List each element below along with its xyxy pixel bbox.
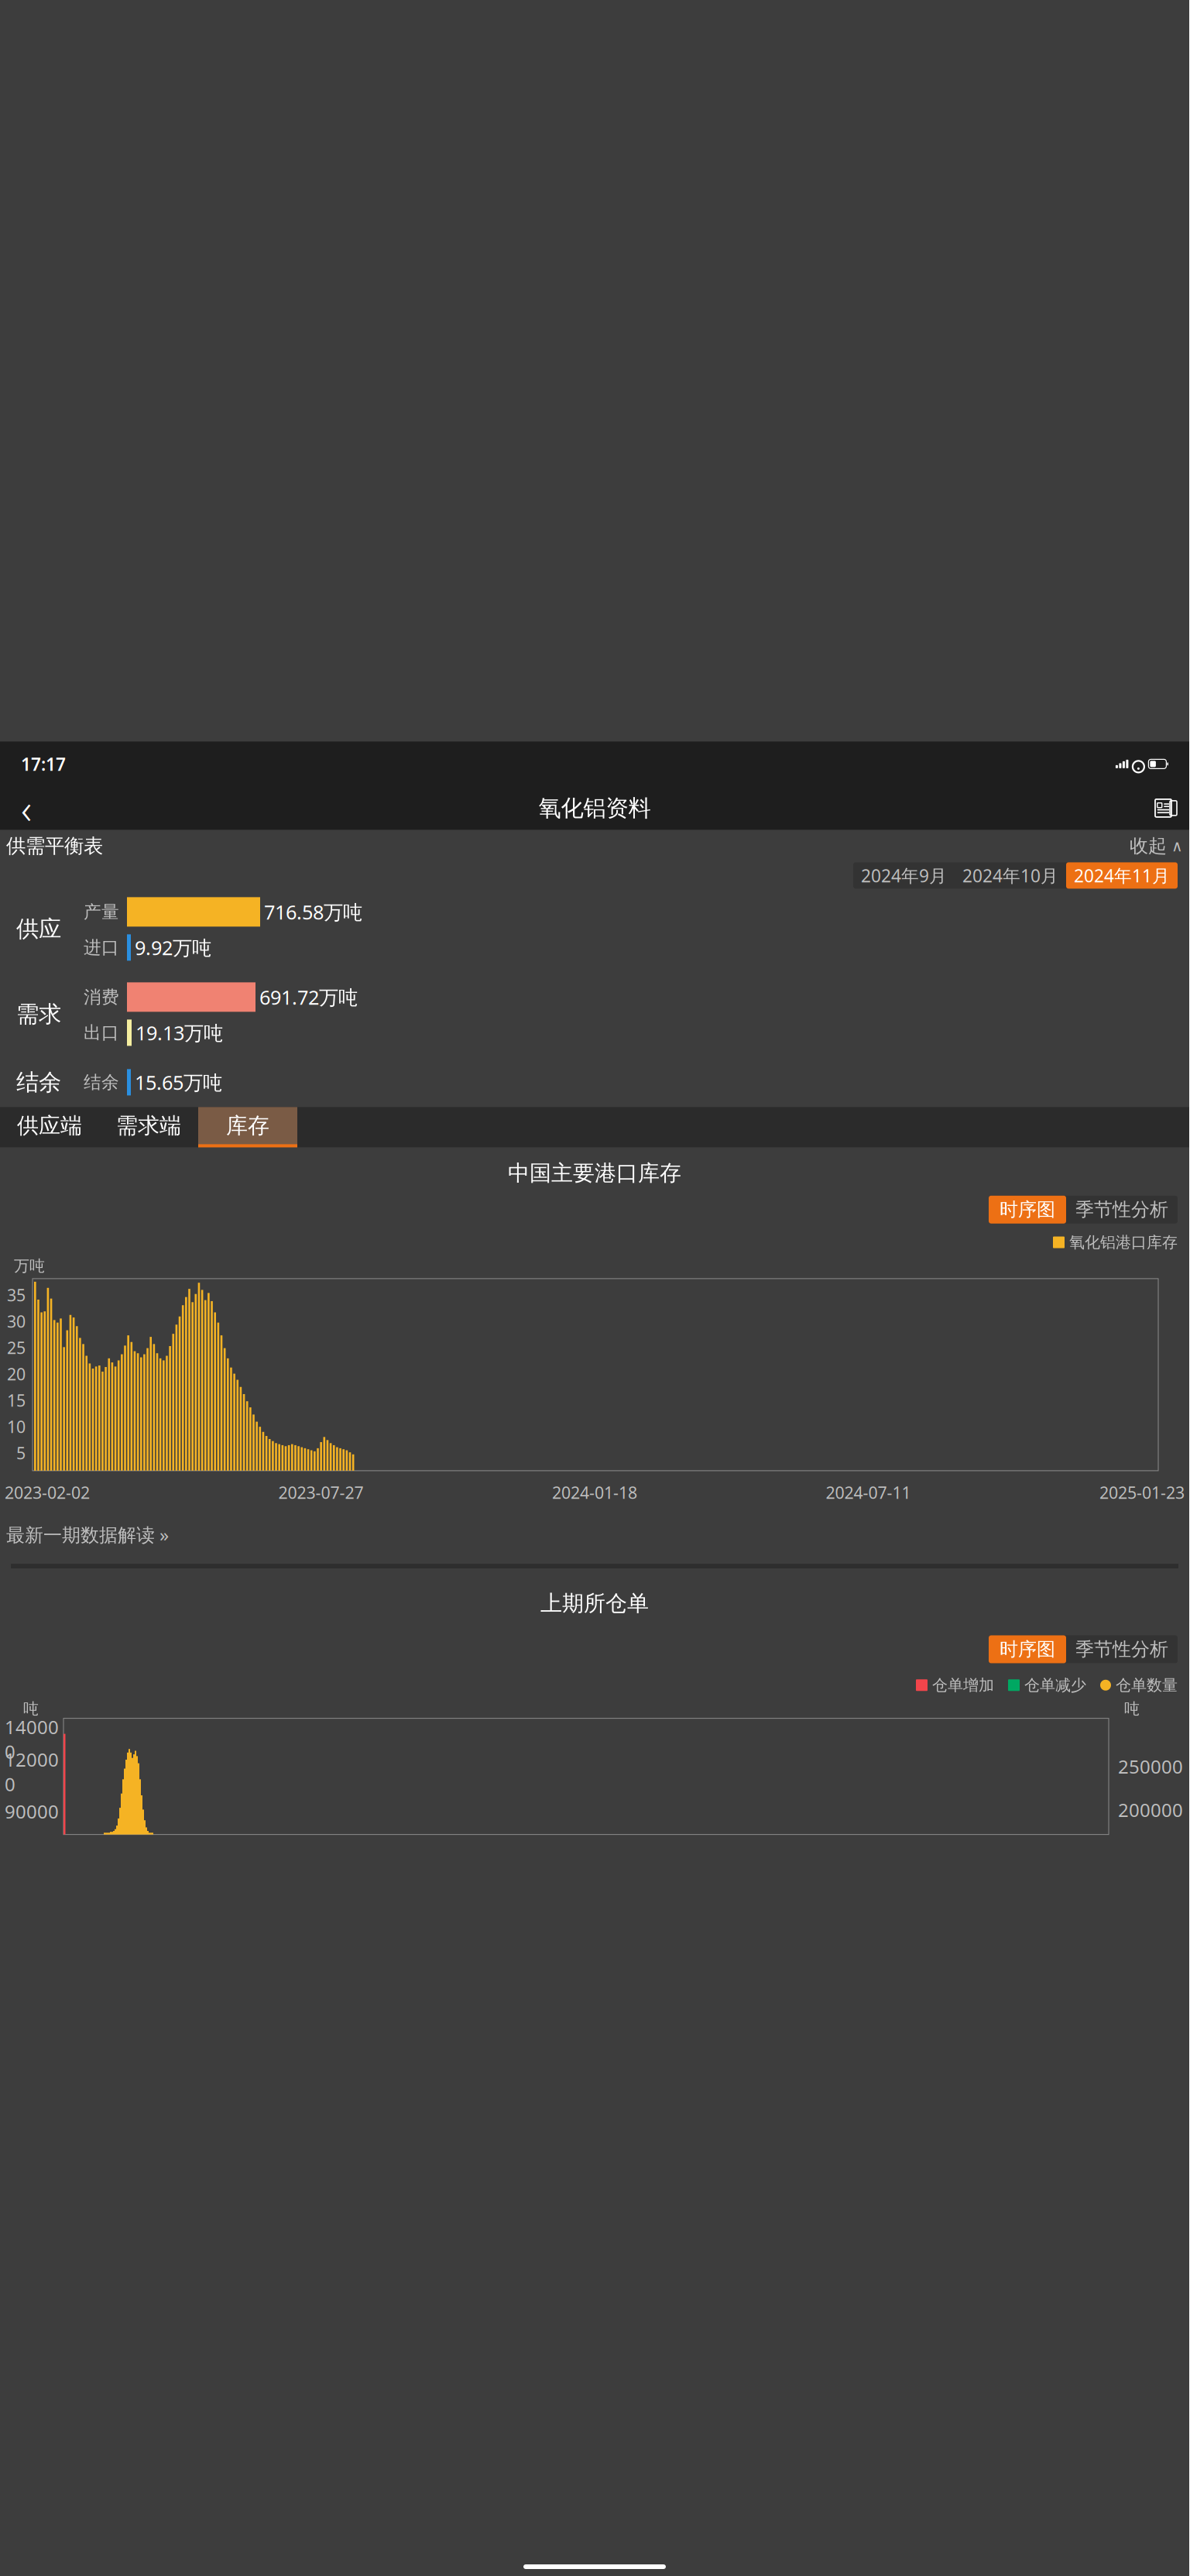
staticText: 2024年10月	[962, 864, 1058, 887]
staticText: ‹	[21, 781, 32, 836]
button[interactable]: 季节性分析	[1066, 1196, 1178, 1224]
button[interactable]: 需求端	[99, 1107, 198, 1147]
button[interactable]: 时序图	[989, 1635, 1066, 1663]
staticText: 仓单增加	[932, 1676, 994, 1695]
staticText: 17:17	[21, 752, 66, 776]
staticText: 90000	[5, 1799, 59, 1824]
staticText: 上期所仓单	[540, 1590, 649, 1617]
staticText: 供应	[16, 915, 61, 943]
button[interactable]: 2024年9月	[853, 862, 955, 889]
staticText: 2023-02-02	[5, 1482, 90, 1503]
staticText: 20	[7, 1363, 26, 1385]
staticText: 15	[7, 1389, 26, 1411]
staticText: 出口	[84, 1022, 119, 1043]
staticText: 2024年11月	[1074, 864, 1170, 887]
staticText: 万吨	[14, 1256, 45, 1276]
staticText: 2024-01-18	[552, 1482, 637, 1503]
staticText: 10	[7, 1416, 26, 1437]
button[interactable]: 最新一期数据解读 »	[0, 1514, 1189, 1555]
staticText: 进口	[84, 937, 119, 958]
staticText: 250000	[1118, 1754, 1183, 1779]
button[interactable]: Back	[6, 791, 46, 825]
staticText: 140000	[5, 1715, 59, 1764]
staticText: 吨	[23, 1699, 39, 1718]
button[interactable]: 2024年10月	[955, 862, 1066, 889]
staticText: 9.92万吨	[135, 935, 211, 961]
staticText: 最新一期数据解读 »	[6, 1522, 169, 1547]
button[interactable]: 季节性分析	[1066, 1635, 1178, 1663]
staticText: 691.72万吨	[259, 984, 358, 1010]
button[interactable]: 供应端	[0, 1107, 99, 1147]
staticText: 120000	[5, 1747, 59, 1796]
staticText: 200000	[1118, 1797, 1183, 1822]
staticText: 716.58万吨	[264, 899, 362, 925]
staticText: 结余	[16, 1068, 61, 1096]
staticText: 时序图	[1000, 1198, 1055, 1221]
staticText: 氧化铝港口库存	[1069, 1233, 1178, 1252]
staticText: 仓单减少	[1024, 1676, 1086, 1695]
button[interactable]: 2024年11月	[1066, 862, 1178, 889]
staticText: 35	[7, 1284, 26, 1306]
staticText: 季节性分析	[1075, 1198, 1168, 1221]
staticText: 15.65万吨	[135, 1069, 222, 1095]
staticText: 收起	[1130, 835, 1167, 857]
staticText: 需求端	[116, 1112, 181, 1139]
staticText: 30	[7, 1310, 26, 1332]
button[interactable]: 库存	[198, 1107, 297, 1147]
staticText: 库存	[226, 1112, 269, 1139]
staticText: 时序图	[1000, 1638, 1055, 1661]
staticText: 供需平衡表	[6, 834, 103, 858]
staticText: 2024年9月	[861, 864, 947, 887]
staticText: 2025-01-23	[1099, 1482, 1185, 1503]
staticText: 19.13万吨	[135, 1020, 223, 1046]
staticText: 供应端	[17, 1112, 82, 1139]
staticText: 仓单数量	[1116, 1676, 1178, 1695]
staticText: ∧	[1171, 837, 1183, 855]
staticText: 需求	[16, 1000, 61, 1028]
button[interactable]: Articles	[1149, 791, 1183, 825]
staticText: 2023-07-27	[278, 1482, 364, 1503]
button[interactable]: 收起	[1130, 832, 1183, 861]
staticText: 5	[16, 1442, 26, 1464]
staticText: 2024-07-11	[826, 1482, 911, 1503]
staticText: 25	[7, 1337, 26, 1358]
staticText: 结余	[84, 1072, 119, 1093]
staticText: 吨	[1124, 1699, 1140, 1718]
staticText: 产量	[84, 901, 119, 923]
staticText: 中国主要港口库存	[508, 1160, 681, 1186]
staticText: 消费	[84, 986, 119, 1008]
staticText: 季节性分析	[1075, 1638, 1168, 1661]
staticText: 氧化铝资料	[538, 794, 651, 822]
button[interactable]: 时序图	[989, 1196, 1066, 1224]
